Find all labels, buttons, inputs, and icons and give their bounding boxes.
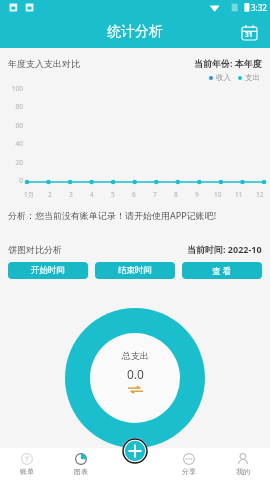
button[interactable]: 我的 — [216, 448, 270, 480]
staticText: 10 — [214, 190, 222, 199]
staticText: 1月 — [24, 190, 35, 199]
button[interactable]: 查 看 — [182, 262, 262, 279]
staticText: 当前年份: 本年度 — [194, 57, 262, 69]
staticText: 当前时间: 2022-10 — [187, 243, 262, 255]
staticText: 分享 — [182, 467, 196, 476]
staticText: 3:32 — [251, 2, 267, 13]
button[interactable]: 结束时间 — [95, 262, 175, 279]
staticText: 31 — [245, 30, 253, 39]
staticText: 2 — [48, 190, 52, 199]
staticText: 20 — [0, 158, 23, 167]
staticText: 9 — [195, 190, 199, 199]
staticText: 12 — [256, 190, 264, 199]
staticText: 11 — [235, 190, 243, 199]
staticText: 我的 — [236, 467, 250, 476]
staticText: 40 — [0, 139, 23, 148]
staticText: 0.0 — [127, 366, 144, 382]
button[interactable]: 开始时间 — [8, 262, 88, 279]
staticText: 8 — [174, 190, 178, 199]
staticText: 查 看 — [212, 265, 232, 277]
staticText: 收入 — [216, 73, 231, 82]
staticText: 7 — [153, 190, 157, 199]
staticText: 80 — [0, 102, 23, 111]
staticText: 100 — [0, 84, 23, 93]
staticText: 60 — [0, 121, 23, 130]
staticText: 饼图对比分析 — [8, 244, 62, 255]
staticText: 开始时间 — [31, 265, 65, 276]
staticText: 分析：您当前没有账单记录！请开始使用APP记账吧! — [8, 209, 270, 221]
button[interactable]: 分享 — [162, 448, 216, 480]
staticText: 支出 — [245, 73, 260, 82]
staticText: 总支出 — [122, 350, 149, 361]
staticText: 4 — [90, 190, 94, 199]
staticText: 年度支入支出对比 — [8, 58, 80, 69]
button[interactable]: 图表 — [54, 448, 108, 480]
staticText: 3 — [69, 190, 73, 199]
staticText: 统计分析 — [107, 23, 163, 41]
staticText: 账单 — [20, 467, 34, 476]
staticText: 6 — [132, 190, 136, 199]
staticText: 结束时间 — [118, 265, 152, 276]
staticText: 0 — [0, 176, 23, 185]
button[interactable]: Add — [108, 448, 162, 480]
button[interactable]: Calendar — [237, 20, 261, 44]
staticText: 5 — [111, 190, 115, 199]
staticText: 图表 — [74, 467, 88, 476]
button[interactable]: 账单 — [0, 448, 54, 480]
